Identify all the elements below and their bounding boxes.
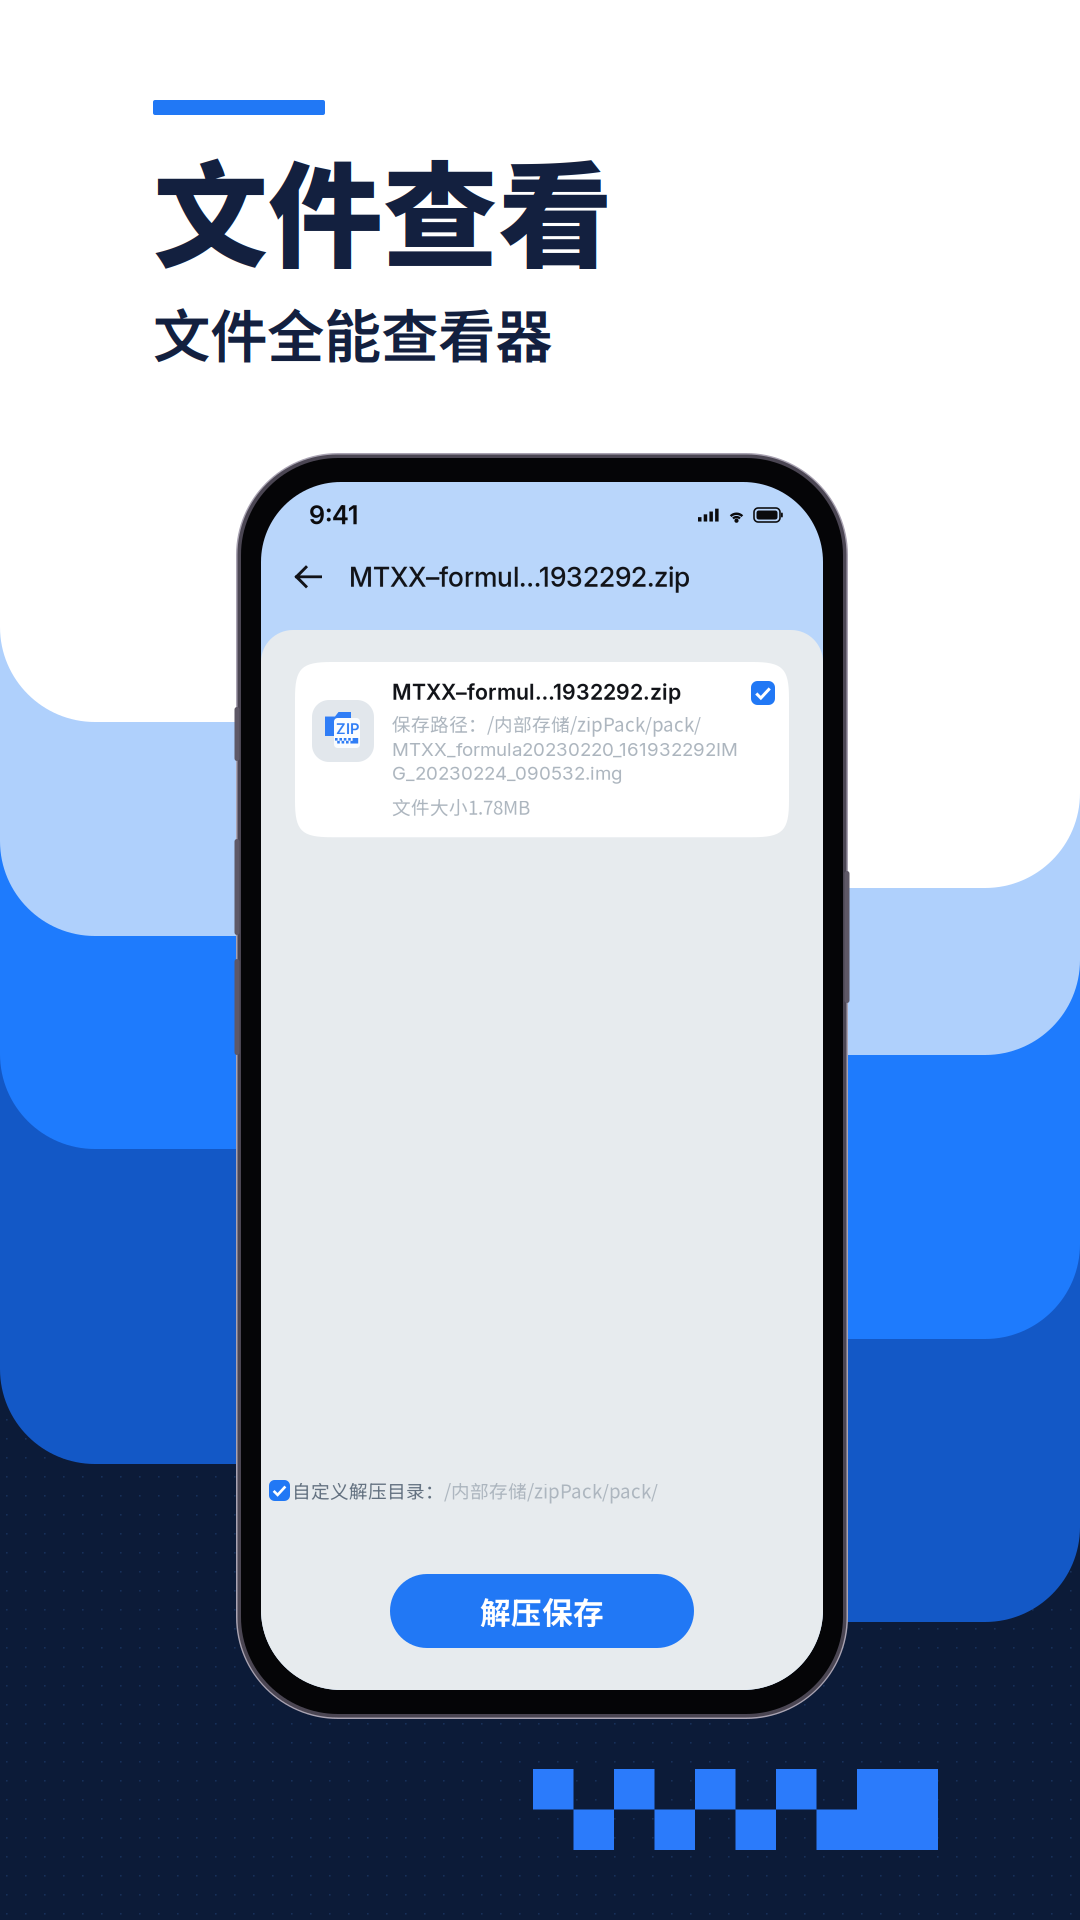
staticText: MTXX–formul…1932292.zip [349, 561, 690, 593]
staticText: G_20230224_090532.img [392, 762, 622, 784]
button[interactable]: Back [281, 548, 335, 606]
button[interactable]: 自定义解压目录： [269, 1477, 823, 1504]
staticText: MTXX_formula20230220_161932292IM [392, 738, 738, 761]
staticText: ZIP [336, 720, 359, 738]
staticText: 解压保存 [480, 1589, 604, 1633]
button[interactable]: ZIP [295, 662, 789, 837]
staticText: /内部存储/zipPack/pack/ [444, 1477, 658, 1504]
staticText: 文件查看 [153, 125, 613, 291]
staticText: 自定义解压目录： [292, 1477, 444, 1504]
staticText: 9:41 [309, 500, 358, 530]
staticText: 文件全能查看器 [153, 291, 552, 374]
staticText: MTXX–formul…1932292.zip [392, 679, 681, 705]
staticText: 文件大小1.78MB [392, 793, 530, 820]
button[interactable]: 解压保存 [390, 1574, 694, 1648]
staticText: 保存路径：/内部存储/zipPack/pack/ [392, 710, 701, 737]
